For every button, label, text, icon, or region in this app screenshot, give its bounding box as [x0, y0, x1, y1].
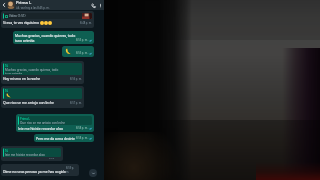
button[interactable]: More options — [97, 2, 103, 8]
staticText: Si esa, te ves riquisimo — [3, 20, 40, 25]
staticText: Que rico se me antojo con leche — [3, 100, 54, 105]
staticText: Prima L — [16, 0, 32, 6]
button[interactable]: 8:55 p. m. — [62, 46, 94, 57]
staticText: 8:59 p. m. — [66, 166, 77, 174]
button[interactable]: Back — [1, 2, 7, 8]
staticText: Tú — [5, 64, 9, 68]
staticText: 8:55 p. m. — [76, 38, 88, 42]
staticText: Muchas gracias, cuando quieras, todo tuy… — [5, 68, 63, 74]
staticText: 8:48 p. m. — [80, 21, 92, 25]
staticText: Dime no seas penoso ya me has cogido — [3, 169, 66, 174]
button[interactable] — [7, 1, 15, 9]
button[interactable]: Tú — [1, 146, 63, 161]
button[interactable]: Call — [89, 1, 97, 9]
staticText: 8:57 p. m. — [70, 101, 82, 105]
staticText: 8:55 p. m. — [76, 51, 88, 55]
button[interactable]: Pero me da pena decirte — [34, 134, 94, 142]
staticText: 8:58 p. m. — [76, 126, 88, 130]
staticText: Que rico se me antojo con leche — [20, 121, 66, 124]
button[interactable]: Prima L — [16, 114, 94, 132]
button[interactable]: Video (1:51) — [1, 11, 94, 28]
staticText: Tú — [5, 149, 9, 153]
staticText: 8:58 p. m. — [76, 136, 88, 140]
button[interactable]: Dime no seas penoso ya me has cogido — [1, 164, 79, 176]
staticText: Tú — [5, 89, 9, 93]
staticText: Prima L — [20, 117, 30, 121]
button[interactable]: Scroll to bottom — [89, 169, 97, 177]
staticText: 8:56 p. m. — [70, 77, 82, 81]
staticText: 8:59 p. m. — [49, 158, 61, 159]
staticText: Jeje me hiciste recordar algo — [18, 126, 64, 130]
staticText: Video (1:51) — [9, 14, 26, 18]
staticText: Hoy mismo en la noche — [3, 76, 41, 81]
staticText: últ. vez hoy a las 8:45 p. m. — [16, 6, 50, 10]
button[interactable]: Tú — [1, 86, 84, 108]
staticText: Pero me da pena decirte — [36, 136, 75, 140]
staticText: Jeje me hiciste recordar algo — [5, 153, 45, 156]
staticText: Muchas gracias, cuando quieras, todo tuy… — [15, 33, 77, 42]
button[interactable]: Tú — [1, 61, 84, 84]
button[interactable]: Muchas gracias, cuando quieras, todo tuy… — [13, 31, 94, 44]
